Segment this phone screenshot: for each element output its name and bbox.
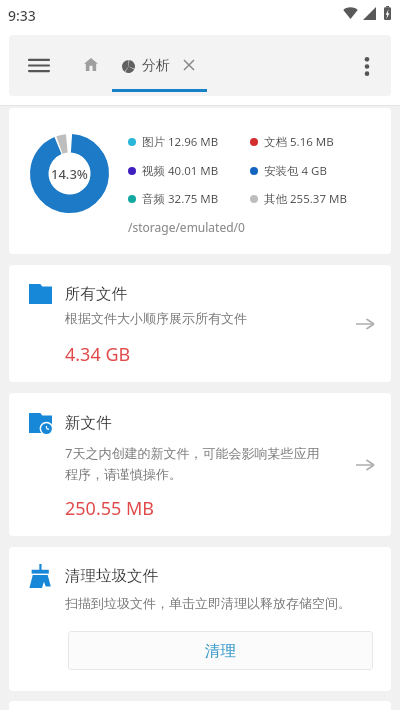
- staticText: 清理: [205, 641, 236, 661]
- staticText: 所有文件: [65, 284, 127, 304]
- staticText: 4.34 GB: [65, 342, 131, 367]
- staticText: 新文件: [65, 413, 112, 433]
- staticText: 分析: [142, 57, 170, 75]
- staticText: 安装包 4 GB: [264, 163, 327, 179]
- staticText: 其他 255.37 MB: [264, 191, 347, 207]
- staticText: 9:33: [8, 6, 36, 25]
- button[interactable]: Menu: [25, 51, 53, 79]
- button[interactable]: Home: [79, 52, 103, 76]
- staticText: 图片 12.96 MB: [142, 134, 219, 150]
- button[interactable]: 分析: [119, 48, 173, 84]
- staticText: 文档 5.16 MB: [264, 134, 334, 150]
- button[interactable]: 清理: [68, 631, 373, 670]
- staticText: /storage/emulated/0: [128, 219, 245, 235]
- staticText: 14.3%: [51, 165, 88, 183]
- staticText: 7天之内创建的新文件，可能会影响某些应用 程序，请谨慎操作。: [65, 444, 320, 483]
- staticText: 扫描到垃圾文件，单击立即清理以释放存储空间。: [65, 595, 351, 611]
- staticText: 视频 40.01 MB: [142, 163, 219, 179]
- button[interactable]: Close tab: [176, 52, 202, 78]
- staticText: 根据文件大小顺序展示所有文件: [65, 310, 247, 326]
- button[interactable]: 所有文件: [9, 265, 391, 382]
- staticText: 清理垃圾文件: [65, 566, 158, 586]
- staticText: 250.55 MB: [65, 496, 155, 521]
- button[interactable]: 新文件: [9, 393, 391, 536]
- button[interactable]: More options: [352, 51, 382, 81]
- staticText: 音频 32.75 MB: [142, 191, 219, 207]
